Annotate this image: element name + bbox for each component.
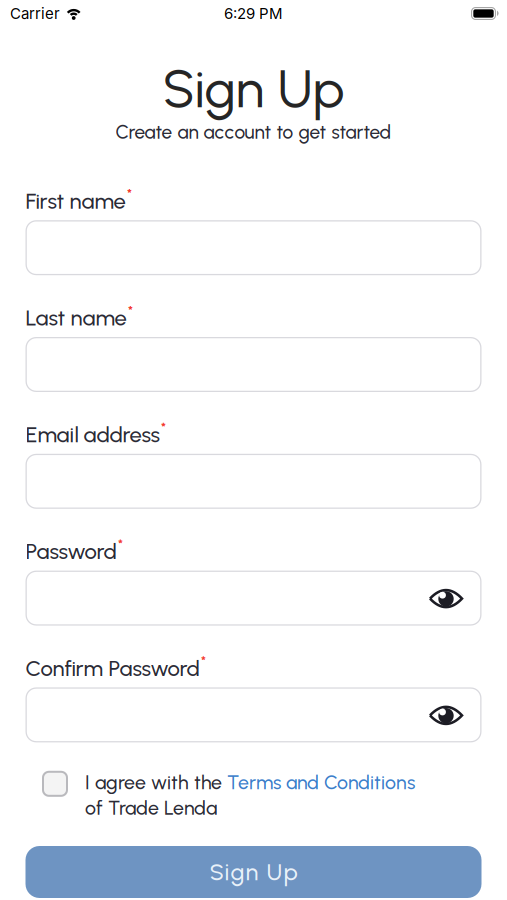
- button[interactable]: Show password: [428, 587, 463, 609]
- staticText: Last name: [25, 305, 126, 331]
- button[interactable]: Sign Up: [25, 846, 481, 898]
- staticText: Create an account to get started: [115, 121, 391, 143]
- staticText: Confirm Password: [25, 655, 199, 681]
- staticText: Email address: [25, 421, 159, 448]
- button[interactable]: Terms and Conditions: [227, 771, 415, 794]
- staticText: *: [201, 653, 206, 670]
- staticText: Carrier: [10, 4, 60, 22]
- staticText: Sign Up: [162, 57, 344, 121]
- staticText: Terms and Conditions: [227, 771, 415, 794]
- staticText: *: [127, 186, 132, 203]
- staticText: 6:29 PM: [224, 4, 283, 22]
- staticText: *: [128, 303, 133, 319]
- staticText: I agree with the: [85, 771, 227, 794]
- button[interactable]: Show password: [428, 704, 463, 726]
- staticText: of Trade Lenda: [85, 796, 217, 820]
- staticText: *: [118, 536, 123, 553]
- staticText: Sign Up: [209, 858, 297, 886]
- button[interactable]: I agree with the Terms and Conditions of…: [42, 771, 68, 797]
- staticText: Password: [25, 538, 116, 565]
- staticText: *: [161, 419, 166, 436]
- staticText: First name: [25, 188, 125, 214]
